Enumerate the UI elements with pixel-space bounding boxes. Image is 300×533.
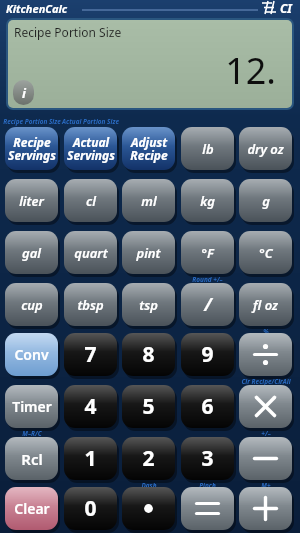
button[interactable]: Plus <box>239 487 292 530</box>
staticText: °C <box>259 244 273 262</box>
staticText: 6 <box>201 392 214 421</box>
staticText: gal <box>22 244 41 262</box>
button[interactable]: 8 <box>122 333 175 376</box>
button[interactable]: dry oz <box>239 127 292 170</box>
staticText: Round +/– <box>192 275 223 284</box>
button[interactable]: Equals <box>181 487 234 530</box>
button[interactable]: Adjust Recipe <box>122 127 175 170</box>
staticText: Conv <box>14 345 49 364</box>
button[interactable]: 5 <box>122 385 175 428</box>
button[interactable]: 6 <box>181 385 234 428</box>
button[interactable]: 2 <box>122 437 175 480</box>
button[interactable]: / <box>181 283 234 326</box>
staticText: M–R/C <box>22 429 42 438</box>
staticText: Pinch <box>199 481 216 490</box>
staticText: dry oz <box>247 140 284 158</box>
staticText: cl <box>86 192 96 210</box>
staticText: 1 <box>84 444 97 473</box>
staticText: lb <box>202 140 214 158</box>
button[interactable]: kg <box>181 179 234 222</box>
button[interactable]: g <box>239 179 292 222</box>
staticText: +/– <box>261 429 271 438</box>
button[interactable]: 9 <box>181 333 234 376</box>
staticText: 12. <box>8 46 276 95</box>
staticText: °F <box>201 244 214 262</box>
staticText: 3 <box>201 444 214 473</box>
button[interactable]: Conv <box>5 333 58 376</box>
button[interactable]: Recipe Servings <box>5 127 58 170</box>
button[interactable]: gal <box>5 231 58 274</box>
staticText: Timer <box>12 397 52 416</box>
staticText: KitchenCalc <box>6 1 68 16</box>
staticText: Recipe Servings <box>8 134 56 163</box>
button[interactable]: ml <box>122 179 175 222</box>
staticText: CI <box>280 0 292 16</box>
button[interactable]: cl <box>64 179 117 222</box>
button[interactable]: fl oz <box>239 283 292 326</box>
button[interactable]: Multiply <box>239 385 292 428</box>
button[interactable]: tbsp <box>64 283 117 326</box>
staticText: i <box>22 84 26 102</box>
button[interactable]: Timer <box>5 385 58 428</box>
button[interactable]: Actual Servings <box>64 127 117 170</box>
staticText: 8 <box>142 340 155 369</box>
staticText: 9 <box>201 340 214 369</box>
button[interactable]: cup <box>5 283 58 326</box>
button[interactable]: Decimal point <box>122 487 175 530</box>
staticText: Adjust Recipe <box>130 134 168 163</box>
staticText: % <box>263 327 269 336</box>
staticText: / <box>204 292 212 317</box>
staticText: Recipe Portion Size <box>14 24 122 40</box>
button[interactable]: Clear <box>5 487 58 530</box>
staticText: Dash <box>141 481 157 490</box>
staticText: ml <box>141 192 157 210</box>
staticText: Recipe Portion Size <box>3 117 61 126</box>
staticText: 7 <box>84 340 97 369</box>
button[interactable]: 7 <box>64 333 117 376</box>
staticText: g <box>262 192 270 210</box>
staticText: quart <box>74 244 108 262</box>
staticText: Actual Servings <box>67 134 115 163</box>
staticText: cup <box>21 296 43 314</box>
staticText: Rcl <box>21 449 43 469</box>
staticText: Clear <box>14 499 50 518</box>
button[interactable]: °F <box>181 231 234 274</box>
button[interactable]: °C <box>239 231 292 274</box>
button[interactable]: 0 <box>64 487 117 530</box>
button[interactable]: tsp <box>122 283 175 326</box>
staticText: Actual Portion Size <box>62 117 119 126</box>
staticText: M+ <box>261 481 271 490</box>
staticText: 2 <box>142 444 155 473</box>
button[interactable]: 1 <box>64 437 117 480</box>
button[interactable]: Rcl <box>5 437 58 480</box>
staticText: fl oz <box>253 296 278 314</box>
staticText: kg <box>200 192 215 210</box>
button[interactable]: quart <box>64 231 117 274</box>
button[interactable]: Info <box>13 80 34 105</box>
staticText: liter <box>19 192 44 210</box>
staticText: 4 <box>84 392 97 421</box>
button[interactable]: pint <box>122 231 175 274</box>
button[interactable]: 4 <box>64 385 117 428</box>
staticText: tbsp <box>77 296 104 314</box>
staticText: 0 <box>84 494 97 523</box>
button[interactable]: 3 <box>181 437 234 480</box>
staticText: 5 <box>142 392 155 421</box>
staticText: tsp <box>139 296 158 314</box>
button[interactable]: Minus <box>239 437 292 480</box>
button[interactable]: lb <box>181 127 234 170</box>
button[interactable]: liter <box>5 179 58 222</box>
button[interactable]: Divide <box>239 333 292 376</box>
staticText: pint <box>136 244 161 262</box>
staticText: Clr Recipe/ClrAll <box>241 377 291 386</box>
